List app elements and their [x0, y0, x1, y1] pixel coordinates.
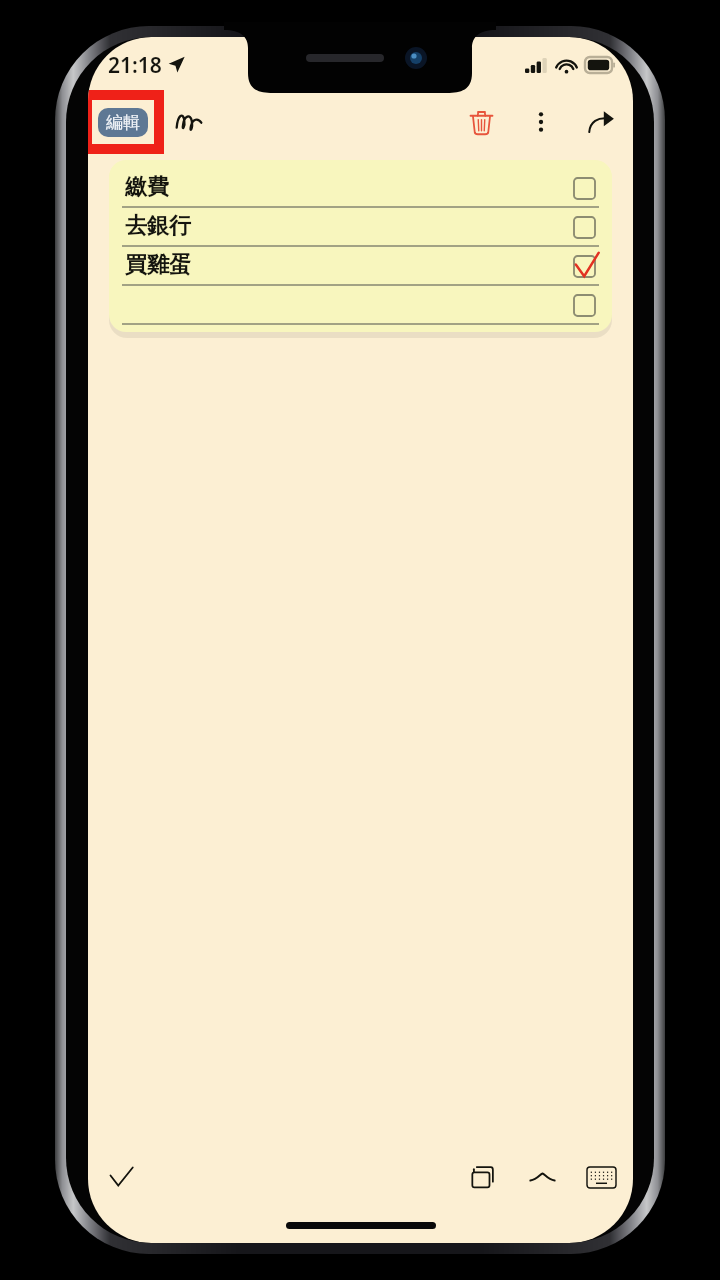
staticText: 買雞蛋: [125, 251, 191, 279]
button[interactable]: 編輯: [98, 108, 148, 137]
button[interactable]: Done: [97, 1153, 145, 1201]
button[interactable]: Keyboard: [577, 1153, 625, 1201]
button[interactable]: Notes list: [459, 1153, 507, 1201]
staticText: 編輯: [106, 112, 140, 133]
button[interactable]: More options: [517, 98, 565, 146]
button[interactable]: 繳費: [122, 169, 599, 208]
button[interactable]: Handwriting: [166, 98, 212, 144]
staticText: 21:18: [108, 51, 162, 80]
button[interactable]: 去銀行: [122, 208, 599, 247]
button[interactable]: [122, 286, 599, 325]
button[interactable]: Collapse: [518, 1153, 566, 1201]
button[interactable]: Share: [577, 98, 625, 146]
button[interactable]: 買雞蛋: [122, 247, 599, 286]
staticText: 繳費: [125, 173, 169, 201]
button[interactable]: Delete: [457, 98, 505, 146]
staticText: 去銀行: [125, 212, 191, 240]
